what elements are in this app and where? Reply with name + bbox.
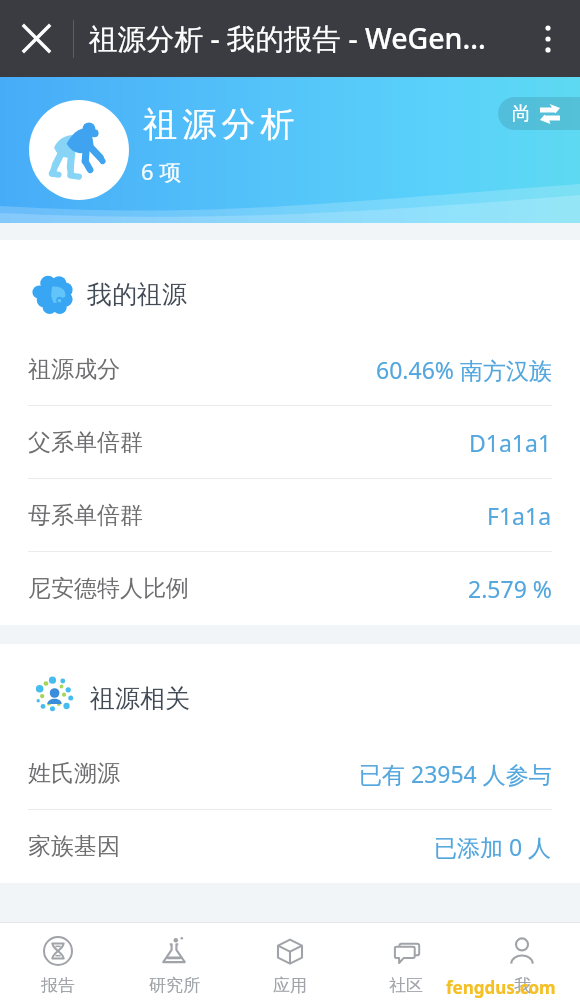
button[interactable]: 报告 xyxy=(0,923,116,1003)
staticText: 祖源相关 xyxy=(90,683,190,714)
staticText: 尚 xyxy=(512,102,531,126)
staticText: 2.579 % xyxy=(468,573,552,604)
staticText: 祖源分析 xyxy=(141,103,297,146)
staticText: 父系单倍群 xyxy=(28,428,143,457)
staticText: 我的祖源 xyxy=(87,279,187,310)
staticText: 母系单倍群 xyxy=(28,501,143,530)
staticText: D1a1a1 xyxy=(469,427,552,458)
staticText: 尼安德特人比例 xyxy=(28,574,189,603)
staticText: 已有 23954 人参与 xyxy=(359,758,552,789)
staticText: 6 项 xyxy=(141,156,182,186)
staticText: 社区 xyxy=(389,975,423,996)
button[interactable]: Switch report xyxy=(498,97,580,130)
staticText: F1a1a xyxy=(487,500,552,531)
button[interactable]: 研究所 xyxy=(116,923,232,1003)
button[interactable]: More options xyxy=(516,0,580,77)
staticText: 已添加 0 人 xyxy=(434,831,552,862)
staticText: 应用 xyxy=(273,975,307,996)
staticText: 祖源成分 xyxy=(28,355,120,384)
button[interactable]: 我 xyxy=(464,923,580,1003)
button[interactable]: 应用 xyxy=(232,923,348,1003)
staticText: 姓氏溯源 xyxy=(28,759,120,788)
button[interactable]: 母系单倍群 xyxy=(0,479,580,552)
button[interactable]: 尼安德特人比例 xyxy=(0,552,580,625)
button[interactable]: 姓氏溯源 xyxy=(0,737,580,810)
button[interactable]: 社区 xyxy=(348,923,464,1003)
staticText: 我 xyxy=(514,975,531,996)
button[interactable]: 祖源成分 xyxy=(0,333,580,406)
button[interactable]: Close xyxy=(0,0,73,77)
staticText: 祖源分析 - 我的报告 - WeGen... xyxy=(89,19,486,58)
staticText: 报告 xyxy=(41,975,75,996)
staticText: 家族基因 xyxy=(28,832,120,861)
button[interactable]: 家族基因 xyxy=(0,810,580,883)
staticText: fengdus.com xyxy=(446,976,556,999)
staticText: 研究所 xyxy=(149,975,200,996)
staticText: 60.46% 南方汉族 xyxy=(376,354,552,385)
button[interactable]: 父系单倍群 xyxy=(0,406,580,479)
